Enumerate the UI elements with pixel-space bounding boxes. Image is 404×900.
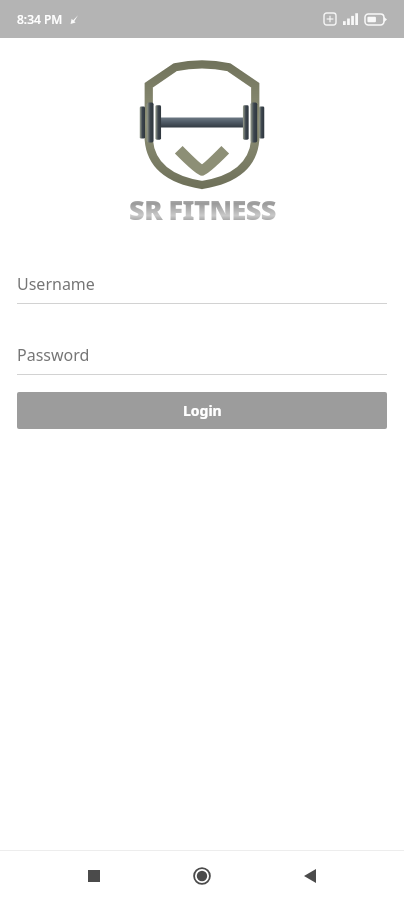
staticText: Password bbox=[17, 344, 90, 366]
button[interactable]: Back bbox=[287, 853, 333, 899]
staticText: 8:34 PM bbox=[17, 11, 63, 27]
button[interactable]: Username bbox=[17, 273, 387, 304]
staticText: SR FITNESS bbox=[129, 191, 276, 223]
staticText: Username bbox=[17, 273, 95, 295]
staticText: Login bbox=[183, 401, 222, 420]
button[interactable]: Login bbox=[17, 392, 387, 429]
button[interactable]: Recent apps bbox=[71, 853, 117, 899]
button[interactable]: Home bbox=[179, 853, 225, 899]
button[interactable]: Password bbox=[17, 344, 387, 375]
